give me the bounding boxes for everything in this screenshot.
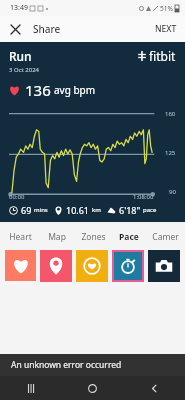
button[interactable]: Camer bbox=[147, 228, 183, 246]
button[interactable]: Heart bbox=[2, 228, 39, 246]
button[interactable]: Pace bbox=[114, 252, 142, 280]
staticText: 90 bbox=[169, 188, 176, 196]
button[interactable]: Map bbox=[39, 228, 75, 246]
button[interactable]: Map bbox=[40, 250, 72, 282]
button[interactable]: Zones bbox=[75, 228, 111, 246]
staticText: Share bbox=[33, 22, 61, 36]
staticText: 3 Oct 2024 bbox=[9, 66, 40, 74]
staticText: 160 bbox=[165, 110, 176, 118]
staticText: mins bbox=[34, 206, 48, 214]
staticText: pace bbox=[143, 206, 157, 214]
button[interactable]: Recents bbox=[0, 376, 61, 400]
button[interactable]: Zones bbox=[76, 250, 108, 282]
staticText: 69 bbox=[21, 204, 32, 216]
staticText: Run bbox=[9, 48, 32, 64]
staticText: 10.61 bbox=[66, 204, 90, 216]
staticText: 13:49 bbox=[10, 3, 28, 13]
staticText: km bbox=[92, 206, 101, 214]
staticText: Heart bbox=[9, 231, 32, 243]
staticText: 125 bbox=[165, 149, 176, 157]
staticText: 6'18" bbox=[119, 204, 141, 216]
button[interactable]: Heart bbox=[5, 250, 36, 281]
button[interactable]: NEXT bbox=[147, 19, 185, 39]
staticText: Map bbox=[48, 231, 66, 243]
staticText: An unknown error occurred bbox=[11, 359, 122, 371]
button[interactable]: Camera bbox=[148, 250, 180, 282]
staticText: NEXT bbox=[155, 23, 177, 35]
staticText: Pace bbox=[119, 231, 139, 243]
staticText: Zones bbox=[81, 231, 106, 243]
staticText: 136 bbox=[25, 80, 51, 100]
button[interactable]: Home bbox=[61, 376, 123, 400]
staticText: 1:08:00 bbox=[133, 193, 154, 201]
staticText: 00:00 bbox=[9, 193, 25, 201]
staticText: avg bpm bbox=[54, 83, 96, 97]
staticText: Camer bbox=[152, 231, 179, 243]
button[interactable]: Close bbox=[4, 18, 26, 40]
button[interactable]: Back bbox=[123, 376, 185, 400]
button[interactable]: Pace bbox=[111, 228, 147, 246]
staticText: 51% bbox=[160, 4, 173, 13]
staticText: fitbit bbox=[149, 48, 176, 64]
